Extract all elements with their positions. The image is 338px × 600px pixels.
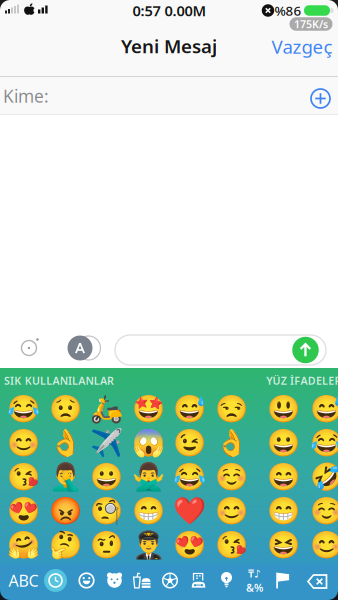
button[interactable]: 🤦‍♂️ xyxy=(50,461,80,491)
button[interactable]: 😍 xyxy=(174,529,204,559)
button[interactable]: 😘 xyxy=(216,529,246,559)
button[interactable]: Vazgeç xyxy=(271,34,332,59)
button[interactable] xyxy=(18,337,40,359)
staticText: 175K/s xyxy=(294,17,328,31)
button[interactable]: 🙅‍♂️ xyxy=(133,461,163,491)
button[interactable]: 😅 xyxy=(311,393,338,423)
button[interactable] xyxy=(63,335,97,361)
staticText: &% xyxy=(246,580,263,595)
button[interactable] xyxy=(76,570,96,590)
button[interactable] xyxy=(104,570,124,590)
staticText: Vazgeç xyxy=(271,34,332,59)
staticText: 😍 xyxy=(7,495,40,526)
button[interactable]: 😂 xyxy=(311,427,338,457)
staticText: ❤️ xyxy=(173,495,206,526)
button[interactable] xyxy=(308,86,332,110)
staticText: 👌 xyxy=(214,427,247,458)
staticText: 😂 xyxy=(7,393,40,424)
button[interactable] xyxy=(305,572,329,590)
button[interactable]: 😃 xyxy=(268,393,298,423)
button[interactable]: 😁 xyxy=(133,495,163,525)
button[interactable] xyxy=(160,570,180,590)
staticText: 😟 xyxy=(48,393,81,424)
staticText: 😅 xyxy=(310,393,338,424)
button[interactable] xyxy=(217,571,235,590)
staticText: 😃 xyxy=(267,393,300,424)
button[interactable]: ❤️ xyxy=(174,495,204,525)
button[interactable]: 😉 xyxy=(174,427,204,457)
button[interactable]: 🤨 xyxy=(91,529,121,559)
staticText: 😱 xyxy=(131,427,164,458)
button[interactable]: ₸♪ xyxy=(244,571,264,590)
staticText: 😊 xyxy=(310,529,338,560)
button[interactable]: 😀 xyxy=(268,427,298,457)
staticText: 😂 xyxy=(173,461,206,492)
button[interactable]: 👌 xyxy=(216,427,246,457)
button[interactable]: 🤣 xyxy=(311,461,338,491)
button[interactable]: 😂 xyxy=(174,461,204,491)
button[interactable]: 🛵 xyxy=(91,393,121,423)
staticText: 😂 xyxy=(310,427,338,458)
button[interactable]: 😡 xyxy=(50,495,80,525)
button[interactable] xyxy=(44,569,67,592)
button[interactable] xyxy=(292,337,319,363)
staticText: 👌 xyxy=(48,427,81,458)
staticText: 😡 xyxy=(48,495,81,526)
staticText: 😀 xyxy=(267,427,300,458)
button[interactable]: ✈️ xyxy=(91,427,121,457)
button[interactable]: 😱 xyxy=(133,427,163,457)
button[interactable]: ☺️ xyxy=(216,461,246,491)
button[interactable]: 🤩 xyxy=(133,393,163,423)
staticText: 😍 xyxy=(173,529,206,560)
button[interactable]: 🤔 xyxy=(50,529,80,559)
button[interactable]: 😍 xyxy=(8,495,38,525)
staticText: 😘 xyxy=(214,529,247,560)
staticText: SIK KULLANILANLAR xyxy=(4,373,114,388)
staticText: ☺️ xyxy=(310,495,338,526)
staticText: %86 xyxy=(274,2,301,19)
staticText: ABC xyxy=(8,570,38,591)
button[interactable]: 😘 xyxy=(8,461,38,491)
button[interactable] xyxy=(133,572,151,588)
staticText: 👨‍✈️ xyxy=(131,529,164,560)
staticText: 😒 xyxy=(214,393,247,424)
button[interactable] xyxy=(115,335,326,365)
staticText: Kime: xyxy=(3,84,49,107)
button[interactable]: 😀 xyxy=(91,461,121,491)
staticText: 😀 xyxy=(90,461,123,492)
staticText: 😘 xyxy=(7,461,40,492)
staticText: 😊 xyxy=(214,495,247,526)
button[interactable] xyxy=(275,572,290,589)
button[interactable]: 😂 xyxy=(8,393,38,423)
button[interactable]: 👨‍✈️ xyxy=(133,529,163,559)
button[interactable]: 😅 xyxy=(174,393,204,423)
button[interactable]: 😁 xyxy=(268,495,298,525)
staticText: 🤨 xyxy=(90,529,123,560)
button[interactable]: 😆 xyxy=(268,529,298,559)
button[interactable] xyxy=(190,572,206,588)
staticText: 😄 xyxy=(267,461,300,492)
button[interactable]: 😊 xyxy=(311,529,338,559)
staticText: 😅 xyxy=(173,393,206,424)
staticText: 🤣 xyxy=(310,461,338,492)
button[interactable]: 👌 xyxy=(50,427,80,457)
staticText: 🛵 xyxy=(90,393,123,424)
button[interactable]: ☺️ xyxy=(311,495,338,525)
staticText: 🧐 xyxy=(90,495,123,526)
staticText: ☺️ xyxy=(214,461,247,492)
button[interactable]: 😒 xyxy=(216,393,246,423)
button[interactable]: 😄 xyxy=(268,461,298,491)
button[interactable]: 😊 xyxy=(8,427,38,457)
staticText: ₸♪ xyxy=(248,566,261,580)
staticText: ✈️ xyxy=(90,427,123,458)
button[interactable]: 😊 xyxy=(216,495,246,525)
button[interactable]: ABC xyxy=(8,570,38,591)
staticText: 😊 xyxy=(7,427,40,458)
staticText: Yeni Mesaj xyxy=(121,34,217,58)
staticText: 🤗 xyxy=(7,529,40,560)
staticText: 🤩 xyxy=(131,393,164,424)
button[interactable]: 😟 xyxy=(50,393,80,423)
staticText: 🤔 xyxy=(48,529,81,560)
button[interactable]: 🧐 xyxy=(91,495,121,525)
button[interactable]: 🤗 xyxy=(8,529,38,559)
